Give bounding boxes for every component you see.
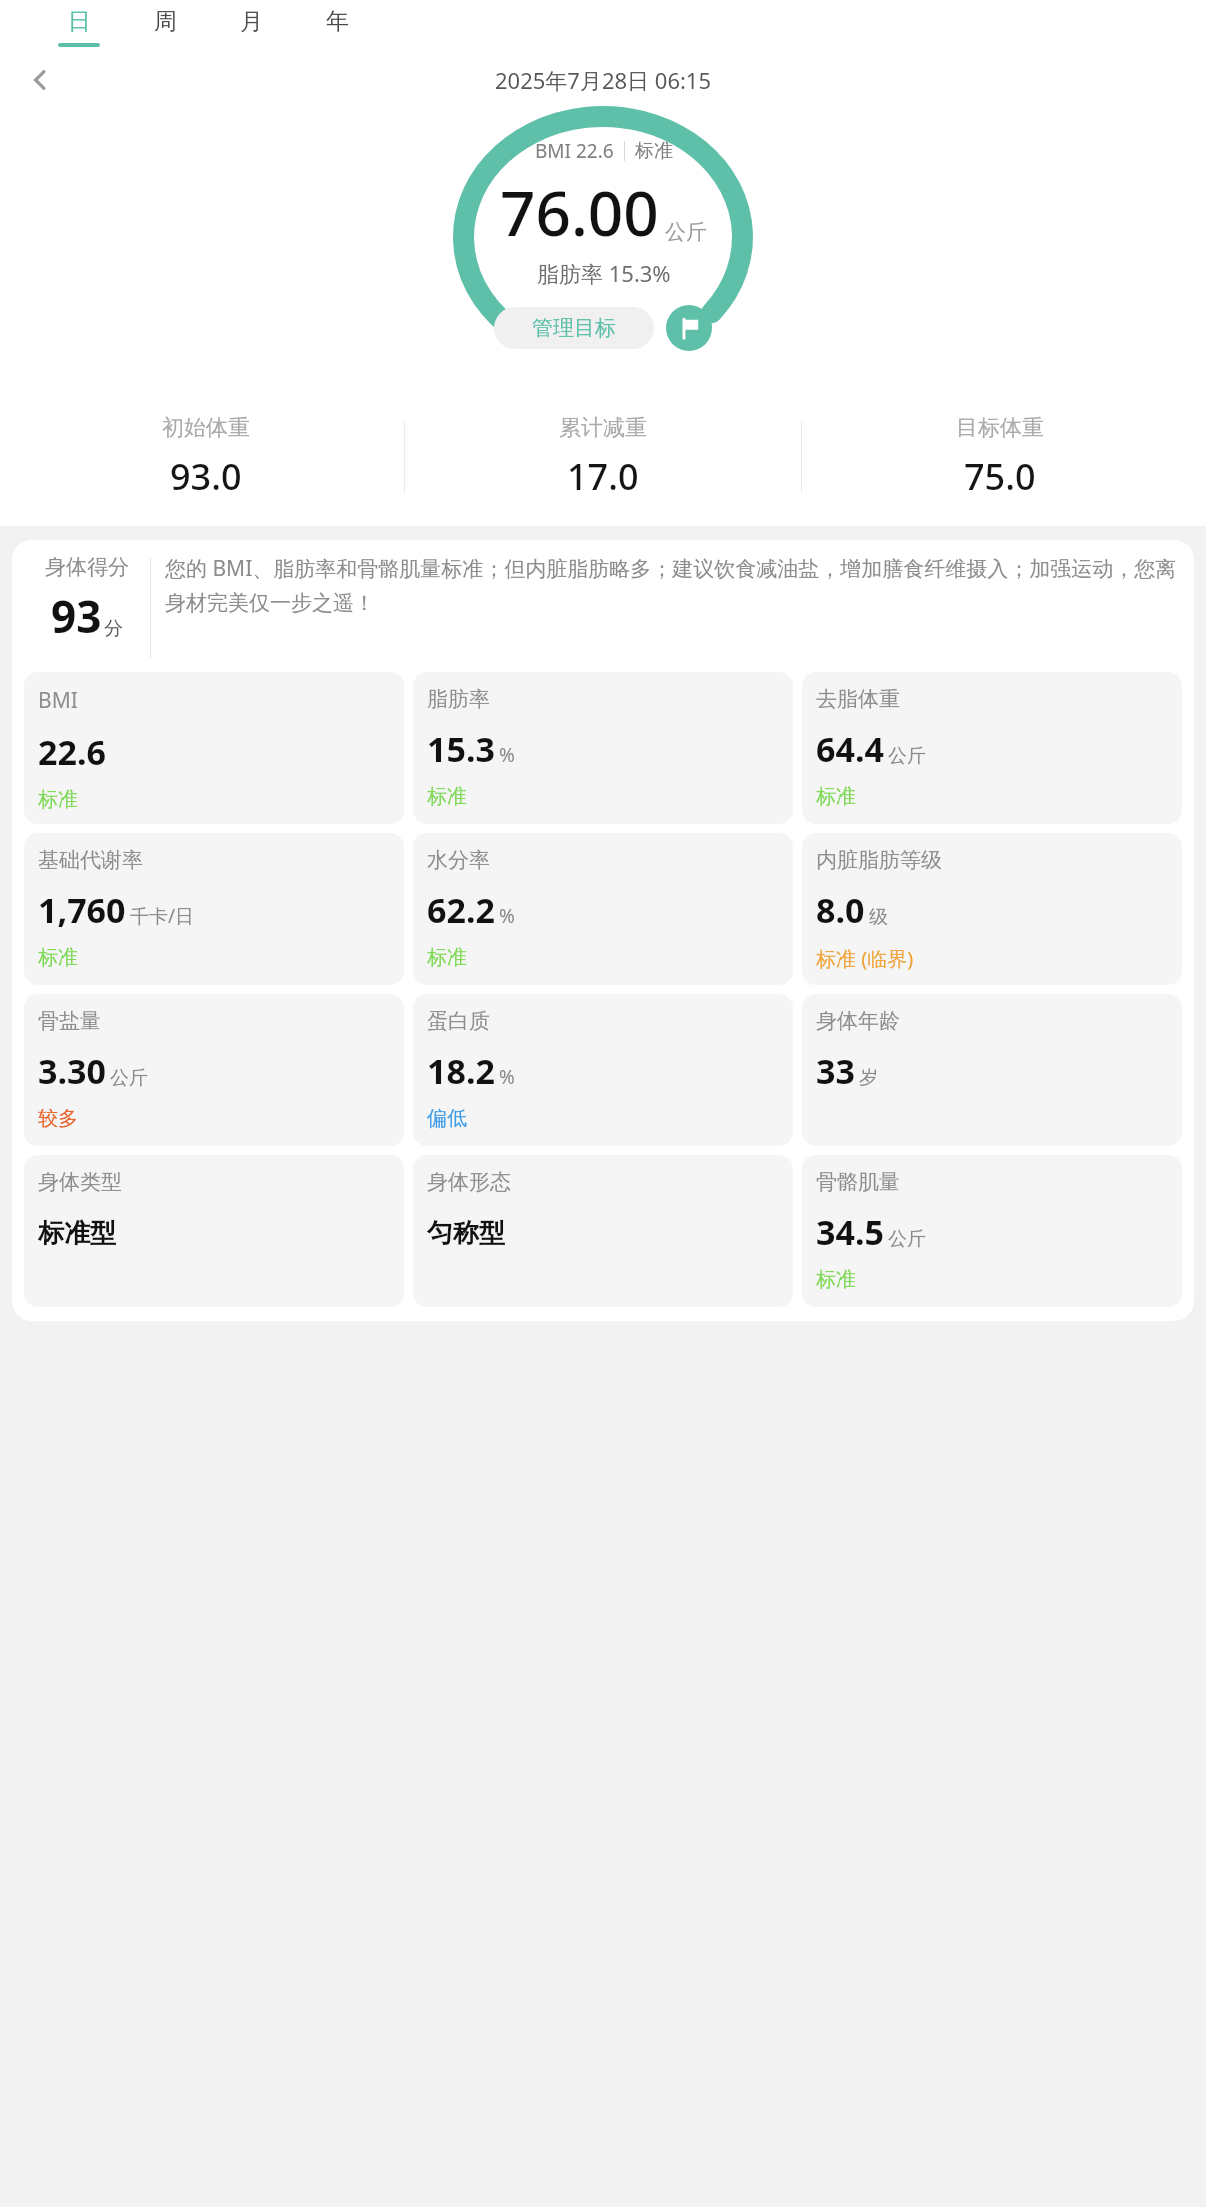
button[interactable]: 目标 (666, 305, 712, 351)
button[interactable]: 内脏脂肪等级 (802, 833, 1182, 985)
button[interactable]: 水分率 (413, 833, 793, 985)
staticText: 标准 (816, 1267, 856, 1292)
staticText: 累计减重 (559, 414, 647, 442)
staticText: 较多 (38, 1106, 78, 1131)
staticText: 公斤 (665, 219, 707, 245)
staticText: 公斤 (110, 1066, 148, 1090)
staticText: 骨骼肌量 (816, 1169, 900, 1195)
button[interactable]: BMI (24, 672, 404, 824)
staticText: 93 (51, 586, 102, 646)
staticText: 初始体重 (162, 414, 250, 442)
staticText: 标准 (427, 784, 467, 809)
staticText: 基础代谢率 (38, 847, 143, 873)
button[interactable]: 目标体重 (802, 402, 1198, 512)
staticText: 日 (68, 7, 91, 36)
staticText: 93.0 (170, 452, 242, 501)
button[interactable]: 年 (298, 0, 376, 58)
button[interactable]: 骨骼肌量 (802, 1155, 1182, 1307)
staticText: 身体类型 (38, 1169, 122, 1195)
staticText: 管理目标 (532, 315, 616, 341)
staticText: 分 (104, 617, 123, 641)
staticText: 去脂体重 (816, 686, 900, 712)
staticText: 公斤 (888, 1227, 926, 1251)
staticText: 8.0 (816, 887, 865, 933)
staticText: % (499, 742, 515, 768)
staticText: 15.3 (427, 726, 495, 772)
staticText: 标准 (635, 139, 673, 163)
button[interactable]: 骨盐量 (24, 994, 404, 1146)
button[interactable]: 身体年龄 (802, 994, 1182, 1146)
staticText: 水分率 (427, 847, 490, 873)
button[interactable]: 蛋白质 (413, 994, 793, 1146)
staticText: 脂肪率 (427, 686, 490, 712)
staticText: 62.2 (427, 887, 495, 933)
staticText: 身体得分 (45, 554, 129, 580)
staticText: % (499, 903, 515, 929)
staticText: 标准 (临界) (816, 945, 914, 972)
staticText: 34.5 (816, 1209, 884, 1255)
button[interactable]: 身体类型 (24, 1155, 404, 1307)
staticText: 64.4 (816, 726, 884, 772)
staticText: 内脏脂肪等级 (816, 847, 942, 873)
staticText: 76.00 (500, 170, 659, 254)
staticText: 1,760 (38, 887, 126, 933)
staticText: 22.6 (38, 729, 106, 775)
staticText: 3.30 (38, 1048, 106, 1094)
button[interactable]: 管理目标 (494, 307, 654, 349)
staticText: 您的 BMI、脂肪率和骨骼肌量标准；但内脏脂肪略多；建议饮食减油盐，增加膳食纤维… (165, 554, 1182, 617)
staticText: % (499, 1064, 515, 1090)
staticText: 岁 (859, 1066, 878, 1090)
staticText: BMI 22.6 (535, 138, 614, 164)
staticText: 标准 (816, 784, 856, 809)
staticText: 标准型 (38, 1217, 116, 1250)
button[interactable]: 日 (40, 0, 118, 58)
staticText: 周 (154, 7, 177, 36)
staticText: 75.0 (964, 452, 1036, 501)
staticText: 偏低 (427, 1106, 467, 1131)
button[interactable]: 脂肪率 (413, 672, 793, 824)
staticText: 身体年龄 (816, 1008, 900, 1034)
staticText: 目标体重 (956, 414, 1044, 442)
staticText: 身体形态 (427, 1169, 511, 1195)
button[interactable]: 初始体重 (8, 402, 404, 512)
staticText: 2025年7月28日 06:15 (495, 65, 712, 95)
staticText: BMI (38, 686, 78, 715)
button[interactable]: 身体形态 (413, 1155, 793, 1307)
staticText: 月 (240, 7, 263, 36)
staticText: 匀称型 (427, 1217, 505, 1250)
button[interactable]: Back (16, 58, 64, 102)
staticText: 级 (869, 905, 888, 929)
staticText: 标准 (38, 787, 78, 812)
button[interactable]: 月 (212, 0, 290, 58)
staticText: 33 (816, 1048, 855, 1094)
button[interactable]: 累计减重 (405, 402, 801, 512)
staticText: 骨盐量 (38, 1008, 101, 1034)
button[interactable]: 去脂体重 (802, 672, 1182, 824)
button[interactable]: 周 (126, 0, 204, 58)
button[interactable]: 基础代谢率 (24, 833, 404, 985)
staticText: 17.0 (567, 452, 639, 501)
staticText: 蛋白质 (427, 1008, 490, 1034)
staticText: 18.2 (427, 1048, 495, 1094)
staticText: 千卡/日 (130, 903, 195, 929)
staticText: 公斤 (888, 744, 926, 768)
staticText: 标准 (427, 945, 467, 970)
staticText: 标准 (38, 945, 78, 970)
staticText: 年 (326, 7, 349, 36)
staticText: 脂肪率 15.3% (537, 258, 671, 288)
